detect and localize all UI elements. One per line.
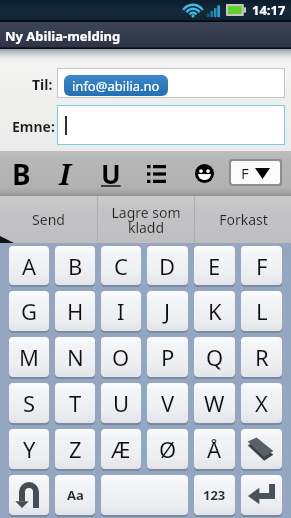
button[interactable]: Q xyxy=(194,337,235,377)
button[interactable]: Forkast xyxy=(195,196,291,243)
button[interactable]: V xyxy=(147,383,188,423)
staticText: Æ xyxy=(111,434,131,464)
button[interactable]: K xyxy=(194,291,235,331)
staticText: C xyxy=(114,251,128,281)
button[interactable]: T xyxy=(55,383,95,423)
staticText: O xyxy=(112,342,130,372)
button[interactable]: M xyxy=(9,337,49,377)
button[interactable]: Font xyxy=(231,161,280,184)
staticText: G xyxy=(21,296,38,326)
button[interactable] xyxy=(57,105,285,145)
staticText: B xyxy=(68,251,83,281)
staticText: U xyxy=(101,156,121,191)
button[interactable]: W xyxy=(194,383,235,423)
button[interactable]: D xyxy=(147,246,188,285)
staticText: R xyxy=(255,342,269,372)
button[interactable]: F xyxy=(241,246,282,285)
staticText: info@abilia.no xyxy=(72,77,160,95)
button[interactable]: Space xyxy=(101,475,188,515)
staticText: J xyxy=(164,296,171,326)
staticText: S xyxy=(23,388,36,418)
button[interactable]: A xyxy=(9,246,49,285)
button[interactable]: R xyxy=(241,337,282,377)
button[interactable]: H xyxy=(55,291,95,331)
staticText: I xyxy=(59,154,71,193)
button[interactable]: O xyxy=(101,337,141,377)
button[interactable]: S xyxy=(9,383,49,423)
button[interactable]: N xyxy=(55,337,95,377)
button[interactable]: Insert emoticon xyxy=(182,151,226,196)
button[interactable]: E xyxy=(194,246,235,285)
staticText: F xyxy=(241,163,249,183)
staticText: Ø xyxy=(159,434,177,464)
button[interactable]: Z xyxy=(55,429,95,469)
button[interactable]: Y xyxy=(9,429,49,469)
staticText: 14:17 xyxy=(252,1,286,19)
staticText: D xyxy=(159,251,176,281)
staticText: Emne: xyxy=(12,117,55,136)
staticText: Forkast xyxy=(219,210,268,229)
button[interactable]: J xyxy=(147,291,188,331)
staticText: B xyxy=(12,155,31,193)
staticText: U xyxy=(113,388,130,418)
staticText: F xyxy=(256,251,268,281)
staticText: Q xyxy=(206,342,224,372)
button[interactable]: Aa xyxy=(55,475,95,515)
staticText: I xyxy=(117,296,125,326)
staticText: M xyxy=(19,342,39,372)
staticText: P xyxy=(161,342,175,372)
staticText: T xyxy=(69,388,82,418)
button[interactable]: Ø xyxy=(147,429,188,469)
button[interactable]: Enter xyxy=(241,475,282,515)
staticText: N xyxy=(67,342,84,372)
staticText: Lagre som kladd xyxy=(111,203,181,237)
button[interactable]: 123 xyxy=(194,475,235,515)
button[interactable]: U xyxy=(101,383,141,423)
button[interactable]: Delete xyxy=(241,429,282,469)
staticText: Z xyxy=(69,434,82,464)
button[interactable]: C xyxy=(101,246,141,285)
button[interactable]: G xyxy=(9,291,49,331)
staticText: Y xyxy=(23,434,36,464)
button[interactable]: P xyxy=(147,337,188,377)
staticText: Ny Abilia-melding xyxy=(5,27,121,45)
button[interactable]: Underline xyxy=(89,151,133,196)
staticText: H xyxy=(67,296,84,326)
staticText: K xyxy=(208,296,222,326)
staticText: Send xyxy=(32,210,65,229)
button[interactable]: Undo xyxy=(9,475,49,515)
staticText: V xyxy=(161,388,175,418)
button[interactable]: X xyxy=(241,383,282,423)
button[interactable]: I xyxy=(101,291,141,331)
button[interactable]: Å xyxy=(194,429,235,469)
button[interactable]: Bold xyxy=(0,151,43,196)
staticText: L xyxy=(256,296,268,326)
staticText: Til: xyxy=(32,75,53,94)
button[interactable]: Bulleted list xyxy=(134,151,178,196)
button[interactable]: L xyxy=(241,291,282,331)
button[interactable]: Æ xyxy=(101,429,141,469)
staticText: W xyxy=(204,388,225,418)
button[interactable]: Italic xyxy=(43,151,87,196)
button[interactable]: info@abilia.no xyxy=(57,68,285,98)
button[interactable]: B xyxy=(55,246,95,285)
staticText: Aa xyxy=(67,486,84,504)
button[interactable]: Lagre som kladd xyxy=(98,196,194,243)
staticText: X xyxy=(255,388,268,418)
staticText: A xyxy=(22,251,37,281)
button[interactable]: Send xyxy=(0,196,97,243)
staticText: E xyxy=(208,251,221,281)
staticText: 123 xyxy=(203,486,226,504)
staticText: Å xyxy=(207,434,222,464)
